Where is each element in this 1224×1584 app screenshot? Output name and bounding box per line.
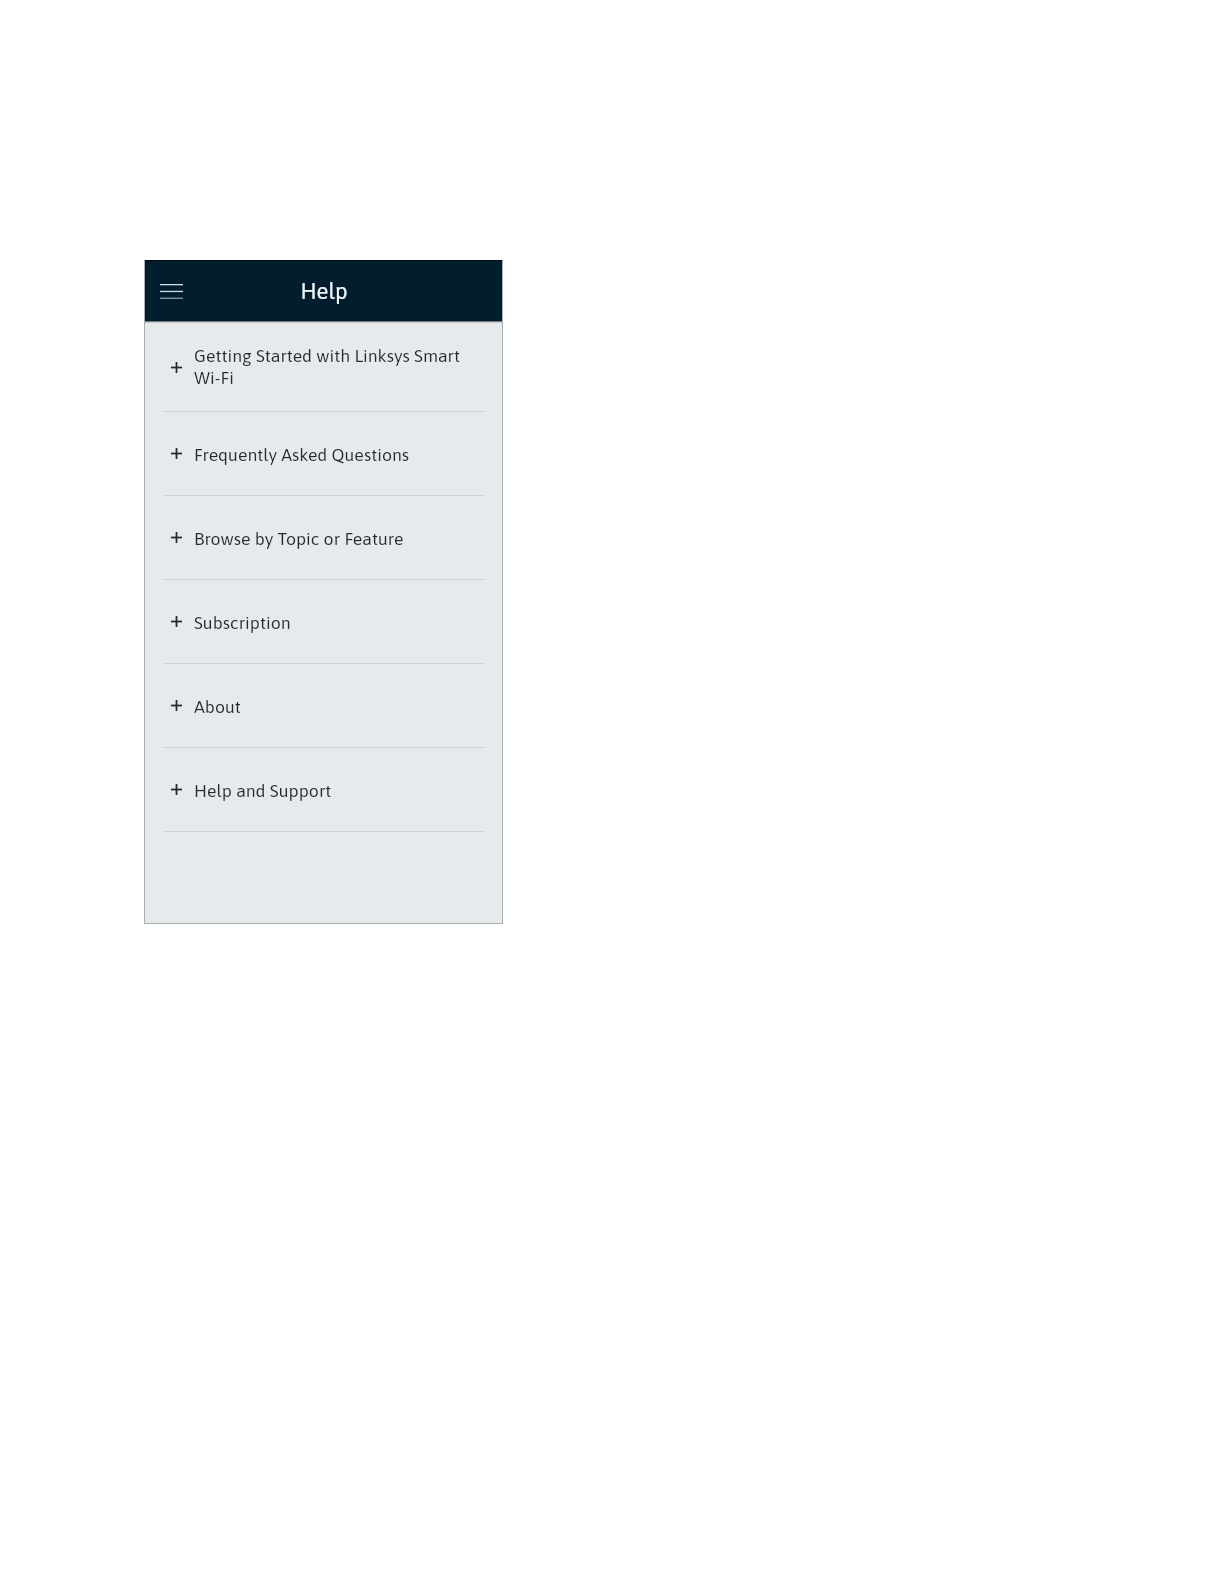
staticText: Frequently Asked Questions	[194, 444, 466, 464]
button[interactable]: Frequently Asked Questions	[144, 412, 503, 496]
button[interactable]: Getting Started with Linksys Smart Wi-Fi	[144, 323, 503, 412]
staticText: Subscription	[194, 612, 466, 632]
button[interactable]: Help and Support	[144, 748, 503, 832]
staticText: About	[194, 696, 466, 716]
button[interactable]: Subscription	[144, 580, 503, 664]
button[interactable]: Browse by Topic or Feature	[144, 496, 503, 580]
staticText: Getting Started with Linksys Smart Wi-Fi	[194, 345, 466, 388]
staticText: Browse by Topic or Feature	[194, 528, 466, 548]
staticText: Help and Support	[194, 780, 466, 800]
staticText: Help	[300, 278, 348, 303]
button[interactable]: Open navigation menu	[157, 277, 185, 305]
button[interactable]: About	[144, 664, 503, 748]
